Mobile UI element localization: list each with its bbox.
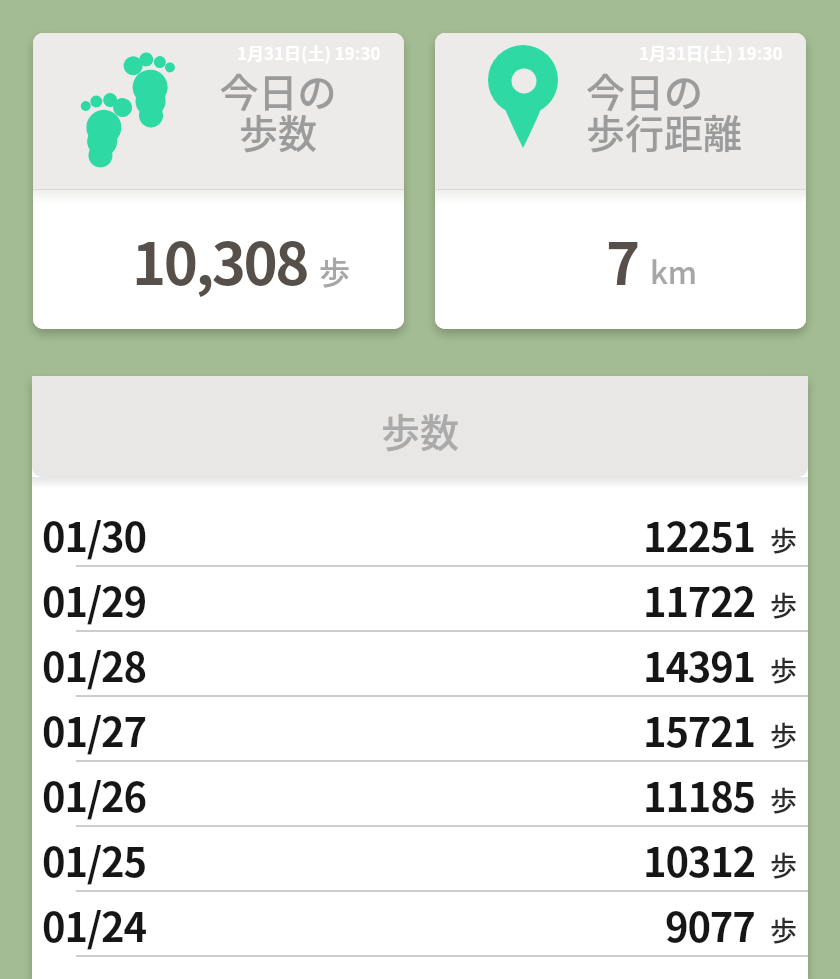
staticText: 歩 <box>770 715 797 754</box>
staticText: 15721 <box>643 701 755 759</box>
staticText: 11185 <box>643 766 755 824</box>
staticText: 歩 <box>770 910 797 949</box>
staticText: 歩 <box>770 520 797 559</box>
staticText: 14391 <box>643 636 755 694</box>
staticText: 1月31日(土) 19:30 <box>639 40 783 65</box>
staticText: 歩 <box>770 585 797 624</box>
button[interactable]: 01/26 <box>32 762 808 827</box>
staticText: 01/30 <box>42 506 146 564</box>
staticText: 10312 <box>643 831 755 889</box>
button[interactable]: 01/25 <box>32 827 808 892</box>
staticText: 01/26 <box>42 766 146 824</box>
button[interactable]: 01/29 <box>32 567 808 632</box>
staticText: 今日の 歩行距離 <box>586 62 743 159</box>
staticText: 1月31日(土) 19:30 <box>237 40 381 65</box>
button[interactable]: 01/28 <box>32 632 808 697</box>
button[interactable]: 01/27 <box>32 697 808 762</box>
staticText: 今日の 歩数 <box>198 62 358 159</box>
staticText: 歩 <box>770 780 797 819</box>
staticText: 歩 <box>770 845 797 884</box>
staticText: 01/29 <box>42 571 146 629</box>
staticText: 歩 <box>770 650 797 689</box>
staticText: 11722 <box>643 571 755 629</box>
staticText: 01/25 <box>42 831 146 889</box>
staticText: 9077 <box>665 896 755 954</box>
button[interactable]: 01/24 <box>32 892 808 957</box>
staticText: km <box>650 248 698 293</box>
staticText: 01/27 <box>42 701 146 759</box>
button[interactable]: 01/30 <box>32 502 808 567</box>
staticText: 7 <box>606 218 638 302</box>
button[interactable]: 今日の 歩行距離 <box>435 33 806 329</box>
staticText: 01/24 <box>42 896 146 954</box>
staticText: 歩 <box>319 248 350 293</box>
staticText: 10,308 <box>132 218 307 302</box>
staticText: 01/28 <box>42 636 146 694</box>
staticText: 歩数 <box>381 402 460 458</box>
button[interactable]: 今日の 歩数 <box>33 33 404 329</box>
staticText: 12251 <box>643 506 755 564</box>
